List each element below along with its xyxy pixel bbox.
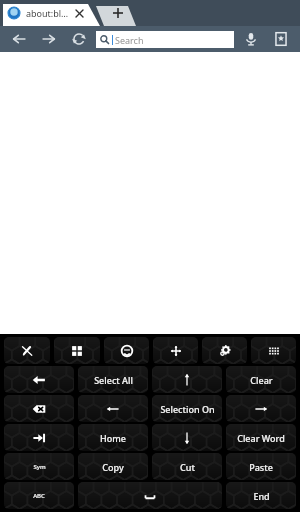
button[interactable]: Layout (54, 337, 100, 364)
button[interactable]: Back (4, 26, 34, 52)
staticText: Copy (102, 461, 124, 473)
button[interactable]: Cut (152, 453, 222, 480)
button[interactable]: Copy (78, 453, 148, 480)
button[interactable]: Down (152, 424, 222, 451)
staticText: Selection On (160, 403, 215, 415)
staticText: Paste (249, 461, 273, 473)
button[interactable]: Space (78, 482, 222, 509)
button[interactable]: Tab (4, 424, 74, 451)
button[interactable]: Clear (226, 366, 296, 393)
staticText: Search (115, 34, 144, 46)
button[interactable]: about:bl… (8, 0, 92, 26)
button[interactable]: Reload (64, 26, 94, 52)
button[interactable]: Settings (202, 337, 247, 364)
button[interactable]: Forward (34, 26, 64, 52)
button[interactable]: Paste (226, 453, 296, 480)
button[interactable]: Right (226, 395, 296, 422)
button[interactable]: ABC (4, 482, 74, 509)
button[interactable]: Up (152, 366, 222, 393)
staticText: Select All (94, 374, 133, 386)
button[interactable]: New tab (104, 0, 132, 26)
button[interactable]: Emoji (104, 337, 149, 364)
staticText: Clear Word (237, 432, 285, 444)
button[interactable]: Move (153, 337, 198, 364)
button[interactable]: Bookmarks (266, 26, 296, 52)
button[interactable]: Enter (4, 366, 74, 393)
button[interactable]: Clear Word (226, 424, 296, 451)
button[interactable]: Home (78, 424, 148, 451)
button[interactable]: Voice search (236, 26, 266, 52)
button[interactable]: Sym (4, 453, 74, 480)
staticText: Sym (33, 463, 46, 471)
button[interactable]: Backspace (4, 395, 74, 422)
button[interactable]: Search (96, 31, 234, 48)
staticText: End (253, 490, 270, 502)
button[interactable]: Selection On (152, 395, 222, 422)
staticText: Cut (180, 461, 195, 473)
staticText: Home (100, 432, 126, 444)
staticText: ABC (33, 492, 45, 500)
button[interactable]: Left (78, 395, 148, 422)
staticText: about:bl… (26, 7, 69, 19)
button[interactable]: End (226, 482, 296, 509)
staticText: Clear (250, 374, 273, 386)
button[interactable]: Handwriting (4, 337, 50, 364)
button[interactable]: Close tab (73, 7, 85, 19)
button[interactable]: Select All (78, 366, 148, 393)
button[interactable]: More (251, 337, 296, 364)
